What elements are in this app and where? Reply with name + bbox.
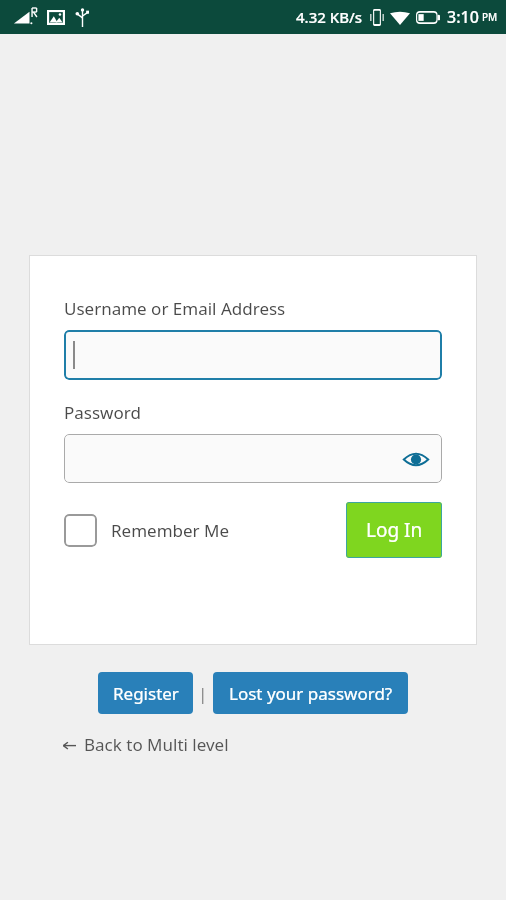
button[interactable] — [64, 330, 442, 380]
button[interactable]: Lost your password? — [213, 672, 408, 714]
button[interactable]: Show password — [402, 445, 430, 473]
button[interactable]: Back to Multi level — [62, 733, 229, 756]
staticText: 4.32 KB/s — [296, 7, 363, 27]
button[interactable]: Remember Me — [64, 514, 230, 547]
staticText: PM — [482, 10, 498, 24]
button[interactable]: Register — [98, 672, 193, 714]
button[interactable]: Log In — [346, 502, 442, 558]
staticText: Back to Multi level — [84, 733, 229, 756]
staticText: Register — [113, 682, 179, 705]
staticText: Lost your password? — [229, 682, 393, 705]
staticText: Username or Email Address — [64, 297, 286, 320]
staticText: | — [198, 682, 208, 705]
staticText: Password — [64, 401, 141, 424]
staticText: Remember Me — [111, 519, 230, 542]
staticText: Log In — [366, 517, 423, 543]
staticText: 3:10 — [447, 6, 479, 28]
button[interactable]: Show password — [64, 434, 442, 483]
